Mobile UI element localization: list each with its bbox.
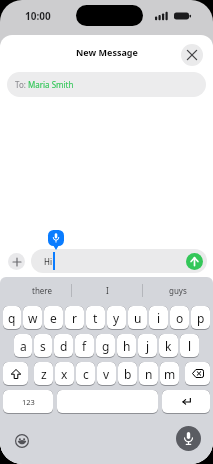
button[interactable]: e — [44, 306, 63, 330]
button[interactable]: p — [191, 306, 210, 330]
button[interactable]: k — [159, 334, 178, 358]
staticText: n — [145, 366, 153, 382]
staticText: I — [106, 285, 109, 296]
button[interactable] — [15, 434, 29, 448]
staticText: there — [32, 285, 52, 296]
staticText: b — [124, 366, 132, 382]
staticText: New Message — [76, 46, 138, 58]
button[interactable] — [57, 390, 158, 414]
button[interactable]: z — [34, 362, 53, 386]
button[interactable]: n — [139, 362, 158, 386]
staticText: u — [134, 310, 142, 326]
staticText: 10:00 — [25, 9, 51, 23]
staticText: c — [83, 366, 89, 382]
button[interactable] — [3, 362, 28, 386]
button[interactable]: q — [3, 306, 21, 330]
button[interactable]: I — [72, 277, 142, 303]
staticText: Hi — [44, 256, 52, 267]
button[interactable]: g — [96, 334, 115, 358]
button[interactable]: j — [138, 334, 157, 358]
staticText: q — [8, 310, 16, 326]
button[interactable]: v — [97, 362, 116, 386]
button[interactable]: h — [117, 334, 136, 358]
button[interactable]: f — [75, 334, 94, 358]
button[interactable]: 123 — [3, 390, 53, 414]
staticText: t — [93, 310, 98, 326]
button[interactable]: Hi — [31, 249, 207, 273]
staticText: i — [157, 310, 161, 326]
button[interactable]: c — [76, 362, 95, 386]
button[interactable]: y — [107, 306, 126, 330]
staticText: g — [102, 338, 110, 354]
button[interactable]: d — [54, 334, 73, 358]
staticText: l — [188, 338, 192, 354]
button[interactable] — [162, 390, 210, 414]
staticText: d — [60, 338, 68, 354]
button[interactable] — [181, 44, 203, 66]
staticText: o — [176, 310, 184, 326]
button[interactable]: w — [23, 306, 42, 330]
button[interactable] — [176, 426, 201, 451]
staticText: guys — [169, 285, 187, 296]
button[interactable]: m — [160, 362, 179, 386]
button[interactable]: i — [149, 306, 168, 330]
staticText: x — [61, 366, 68, 382]
button[interactable]: there — [0, 277, 71, 303]
staticText: m — [164, 366, 176, 382]
staticText: w — [28, 310, 38, 326]
button[interactable]: x — [55, 362, 74, 386]
button[interactable]: b — [118, 362, 137, 386]
staticText: k — [165, 338, 172, 354]
button[interactable] — [8, 253, 25, 270]
staticText: h — [123, 338, 131, 354]
staticText: v — [103, 366, 110, 382]
button[interactable]: r — [65, 306, 84, 330]
button[interactable] — [186, 253, 203, 270]
button[interactable]: u — [128, 306, 147, 330]
staticText: y — [113, 310, 120, 326]
staticText: e — [50, 310, 57, 326]
button[interactable]: t — [86, 306, 105, 330]
button[interactable]: To: Maria Smith — [7, 72, 206, 97]
staticText: p — [197, 310, 205, 326]
staticText: s — [40, 338, 46, 354]
button[interactable]: o — [170, 306, 189, 330]
staticText: To: Maria Smith — [15, 79, 74, 90]
button[interactable]: l — [180, 334, 199, 358]
staticText: j — [146, 338, 150, 354]
staticText: r — [72, 310, 77, 326]
staticText: z — [41, 366, 47, 382]
button[interactable] — [185, 362, 210, 386]
staticText: a — [20, 338, 27, 354]
button[interactable]: guys — [143, 277, 213, 303]
staticText: f — [82, 338, 87, 354]
staticText: 123 — [22, 397, 35, 407]
button[interactable]: a — [14, 334, 32, 358]
button[interactable]: s — [34, 334, 52, 358]
